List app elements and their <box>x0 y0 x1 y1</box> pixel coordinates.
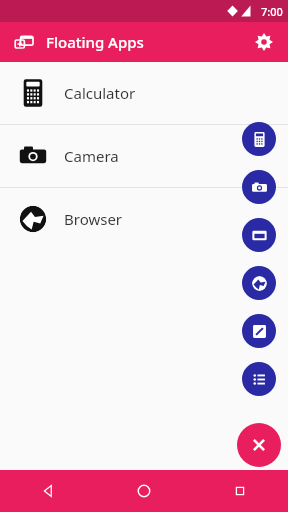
staticText: 7:00 <box>261 4 283 19</box>
button[interactable]: Window <box>242 218 276 252</box>
staticText: Floating Apps <box>46 32 144 52</box>
button[interactable]: Notes <box>242 314 276 348</box>
button[interactable]: Calculator <box>0 62 288 124</box>
button[interactable]: Home <box>96 470 192 512</box>
button[interactable]: Close <box>237 423 281 467</box>
button[interactable]: Settings <box>248 26 280 58</box>
staticText: Camera <box>64 146 119 166</box>
button[interactable]: Calculator <box>242 122 276 156</box>
staticText: Calculator <box>64 83 136 103</box>
button[interactable]: Recents <box>192 470 288 512</box>
staticText: Browser <box>64 209 123 229</box>
button[interactable]: Camera <box>0 125 288 187</box>
button[interactable]: Browser <box>0 188 288 250</box>
button[interactable]: Camera <box>242 170 276 204</box>
button[interactable]: Back <box>0 470 96 512</box>
button[interactable]: Browser <box>242 266 276 300</box>
button[interactable]: List <box>242 362 276 396</box>
